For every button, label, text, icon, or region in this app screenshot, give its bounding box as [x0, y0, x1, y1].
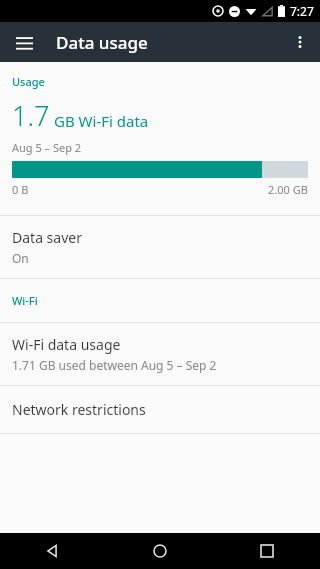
button[interactable]: More options — [284, 26, 316, 58]
staticText: 7:27 — [290, 3, 314, 19]
staticText: GB Wi-Fi data — [54, 111, 149, 131]
staticText: On — [12, 250, 29, 266]
staticText: 2.00 GB — [268, 182, 308, 197]
staticText: Aug 5 – Sep 2 — [12, 140, 82, 155]
button[interactable]: Recent apps — [213, 533, 320, 569]
staticText: 0 B — [12, 182, 29, 197]
staticText: Wi-Fi — [12, 293, 38, 308]
button[interactable]: Home — [106, 533, 213, 569]
button[interactable]: Wi-Fi data usage — [0, 323, 320, 385]
button[interactable]: Data saver — [0, 216, 320, 278]
button[interactable]: Network restrictions — [0, 386, 320, 433]
staticText: Wi-Fi data usage — [12, 335, 121, 354]
staticText: 1.7 — [12, 97, 50, 134]
staticText: Network restrictions — [12, 400, 146, 419]
staticText: Data saver — [12, 228, 82, 247]
button[interactable]: Back — [0, 533, 106, 569]
staticText: 1.71 GB used between Aug 5 – Sep 2 — [12, 357, 217, 373]
staticText: Data usage — [56, 31, 148, 54]
button[interactable]: Open navigation drawer — [8, 26, 40, 58]
staticText: Usage — [12, 74, 45, 89]
